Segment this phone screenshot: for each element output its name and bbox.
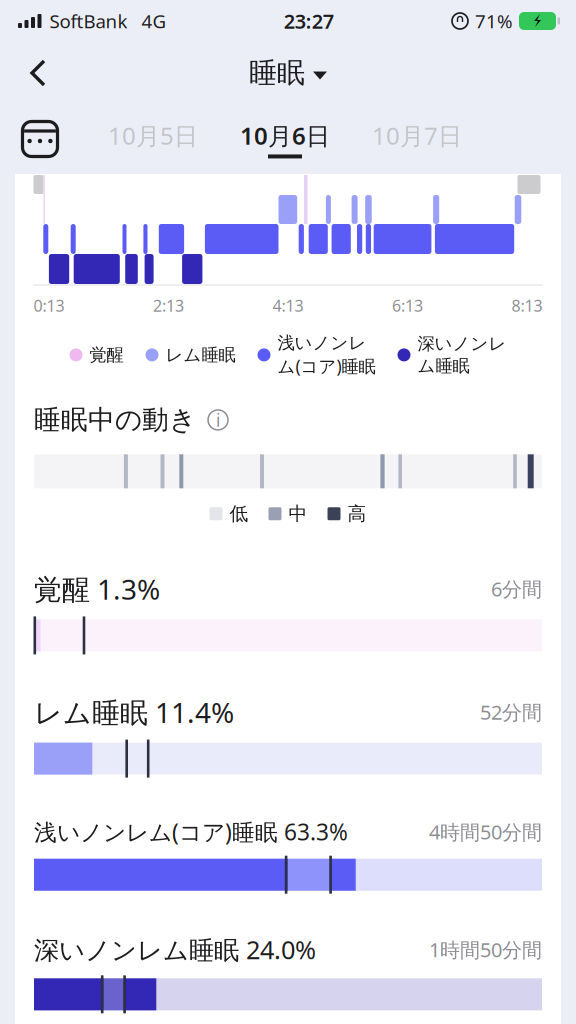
staticText: 浅いノンレム(コア)睡眠 63.3% (34, 817, 348, 847)
button[interactable]: 10月5日 (108, 120, 198, 158)
staticText: 覚醒 (89, 344, 123, 366)
button[interactable]: 10月7日 (372, 120, 462, 158)
staticText: レム睡眠 (165, 344, 235, 366)
staticText: ム睡眠 (417, 355, 469, 377)
button[interactable]: 情報 (205, 407, 231, 433)
staticText: SoftBank (49, 9, 127, 33)
staticText: 中 (288, 502, 307, 525)
staticText: i (216, 408, 220, 431)
staticText: 睡眠 (249, 56, 305, 90)
staticText: 23:27 (284, 8, 334, 34)
staticText: 71% (475, 9, 513, 33)
staticText: 1時間50分間 (429, 936, 542, 963)
staticText: 低 (229, 502, 248, 525)
staticText: 4G (141, 9, 166, 33)
staticText: 4:13 (272, 295, 303, 316)
button[interactable]: 戻る (14, 49, 62, 97)
staticText: 高 (347, 502, 366, 525)
staticText: 10月7日 (372, 120, 462, 151)
staticText: 睡眠中の動き (34, 404, 196, 436)
staticText: 覚醒 1.3% (34, 570, 160, 607)
staticText: 52分間 (480, 699, 542, 725)
staticText: ム(コア)睡眠 (277, 354, 375, 377)
staticText: 深いノンレ (417, 333, 506, 354)
staticText: 4時間50分間 (429, 818, 542, 845)
staticText: レム睡眠 11.4% (34, 693, 234, 731)
staticText: 6分間 (491, 576, 542, 602)
staticText: 深いノンレム睡眠 24.0% (34, 933, 316, 966)
staticText: 10月6日 (240, 120, 330, 151)
staticText: 2:13 (153, 295, 184, 316)
button[interactable]: 睡眠 (249, 56, 327, 90)
staticText: 浅いノンレ (277, 332, 366, 353)
staticText: 8:13 (511, 295, 542, 316)
button[interactable]: 10月6日 (240, 120, 330, 158)
button[interactable]: カレンダー (14, 113, 66, 165)
staticText: 0:13 (33, 295, 64, 316)
staticText: 10月5日 (108, 120, 198, 151)
staticText: 6:13 (392, 295, 423, 316)
